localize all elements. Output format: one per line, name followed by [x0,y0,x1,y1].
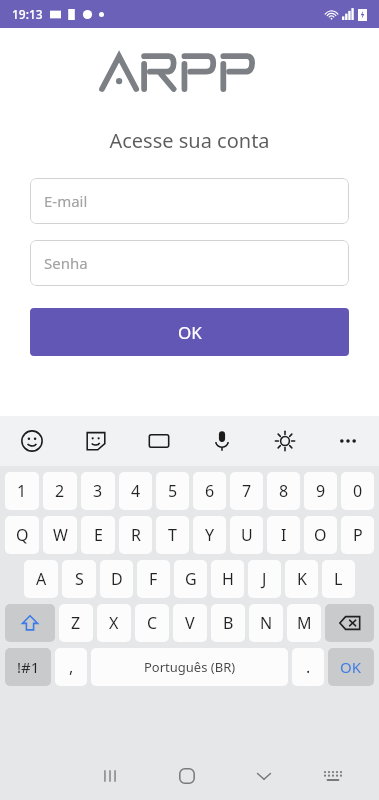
button[interactable]: Backspace [325,604,374,642]
button[interactable]: F [137,560,170,598]
button[interactable]: Home [148,752,225,800]
button[interactable]: H [211,560,244,598]
button[interactable]: !#1 [5,648,51,686]
button[interactable]: Q [5,516,39,554]
button[interactable]: N [249,604,283,642]
button[interactable]: 8 [267,472,300,510]
staticText: 7 [242,480,252,502]
button[interactable]: GIF [127,416,190,466]
button[interactable]: OK [30,308,349,356]
staticText: !#1 [17,657,40,677]
button[interactable]: T [156,516,189,554]
staticText: G [185,568,197,590]
staticText: E [94,524,103,546]
staticText: T [168,524,177,546]
staticText: X [109,612,119,634]
staticText: Y [205,524,215,546]
button[interactable]: Português (BR) [91,648,288,686]
staticText: C [147,612,158,634]
button[interactable]: 7 [230,472,263,510]
staticText: 9 [316,480,326,502]
staticText: 2 [55,480,65,502]
staticText: Z [71,612,81,634]
staticText: 3 [93,480,103,502]
staticText: 5 [168,480,178,502]
staticText: L [334,568,343,590]
staticText: 4 [131,480,141,502]
staticText: D [111,568,123,590]
staticText: M [297,612,312,634]
button[interactable]: L [322,560,355,598]
button[interactable]: J [248,560,281,598]
staticText: N [260,612,273,634]
button[interactable]: U [230,516,263,554]
staticText: 8 [279,480,289,502]
staticText: H [222,568,234,590]
button[interactable]: 4 [119,472,152,510]
staticText: S [75,568,84,590]
button[interactable]: Change keyboard [302,752,364,800]
button[interactable]: X [97,604,131,642]
button[interactable]: E-mail [30,178,349,224]
button[interactable]: Stickers [64,416,127,466]
button[interactable]: G [174,560,207,598]
button[interactable]: C [135,604,169,642]
staticText: Q [16,524,29,546]
button[interactable]: Shift [5,604,55,642]
button[interactable]: More [316,416,379,466]
button[interactable]: Senha [30,240,349,286]
button[interactable]: V [173,604,207,642]
staticText: OK [178,321,202,344]
button[interactable]: Recents [71,752,148,800]
button[interactable]: R [119,516,152,554]
button[interactable]: P [341,516,374,554]
button[interactable]: 5 [156,472,189,510]
button[interactable]: 9 [304,472,337,510]
button[interactable]: O [304,516,337,554]
button[interactable]: 6 [193,472,226,510]
button[interactable]: K [285,560,318,598]
staticText: V [185,612,195,634]
staticText: E-mail [44,191,88,211]
button[interactable]: M [287,604,321,642]
button[interactable]: Emoji [0,416,64,466]
button[interactable]: B [211,604,245,642]
button[interactable]: I [267,516,300,554]
button[interactable]: 2 [43,472,77,510]
staticText: 1 [17,480,27,502]
staticText: OK [340,657,362,677]
staticText: 19:13 [12,6,43,22]
button[interactable]: D [100,560,133,598]
button[interactable]: Y [193,516,226,554]
button[interactable]: 3 [81,472,115,510]
staticText: U [241,524,253,546]
button[interactable]: A [24,560,58,598]
button[interactable]: E [81,516,115,554]
button[interactable]: , [55,648,87,686]
button[interactable]: Hide keyboard [225,752,302,800]
staticText: R [131,524,141,546]
button[interactable]: 1 [5,472,39,510]
button[interactable]: OK [328,648,374,686]
staticText: I [281,524,287,546]
staticText: , [69,656,74,678]
staticText: W [53,524,68,546]
staticText: B [223,612,234,634]
button[interactable]: S [62,560,96,598]
staticText: F [149,568,158,590]
button[interactable]: Z [59,604,93,642]
staticText: Português (BR) [144,658,236,676]
button[interactable]: W [43,516,77,554]
button[interactable]: . [292,648,324,686]
button[interactable]: Voice input [190,416,253,466]
staticText: K [297,568,307,590]
staticText: O [314,524,327,546]
staticText: J [262,568,267,590]
staticText: 6 [205,480,215,502]
button[interactable]: Settings [253,416,316,466]
button[interactable]: 0 [341,472,374,510]
staticText: 0 [353,480,363,502]
staticText: P [353,524,363,546]
staticText: . [306,656,311,678]
staticText: Senha [44,253,88,273]
